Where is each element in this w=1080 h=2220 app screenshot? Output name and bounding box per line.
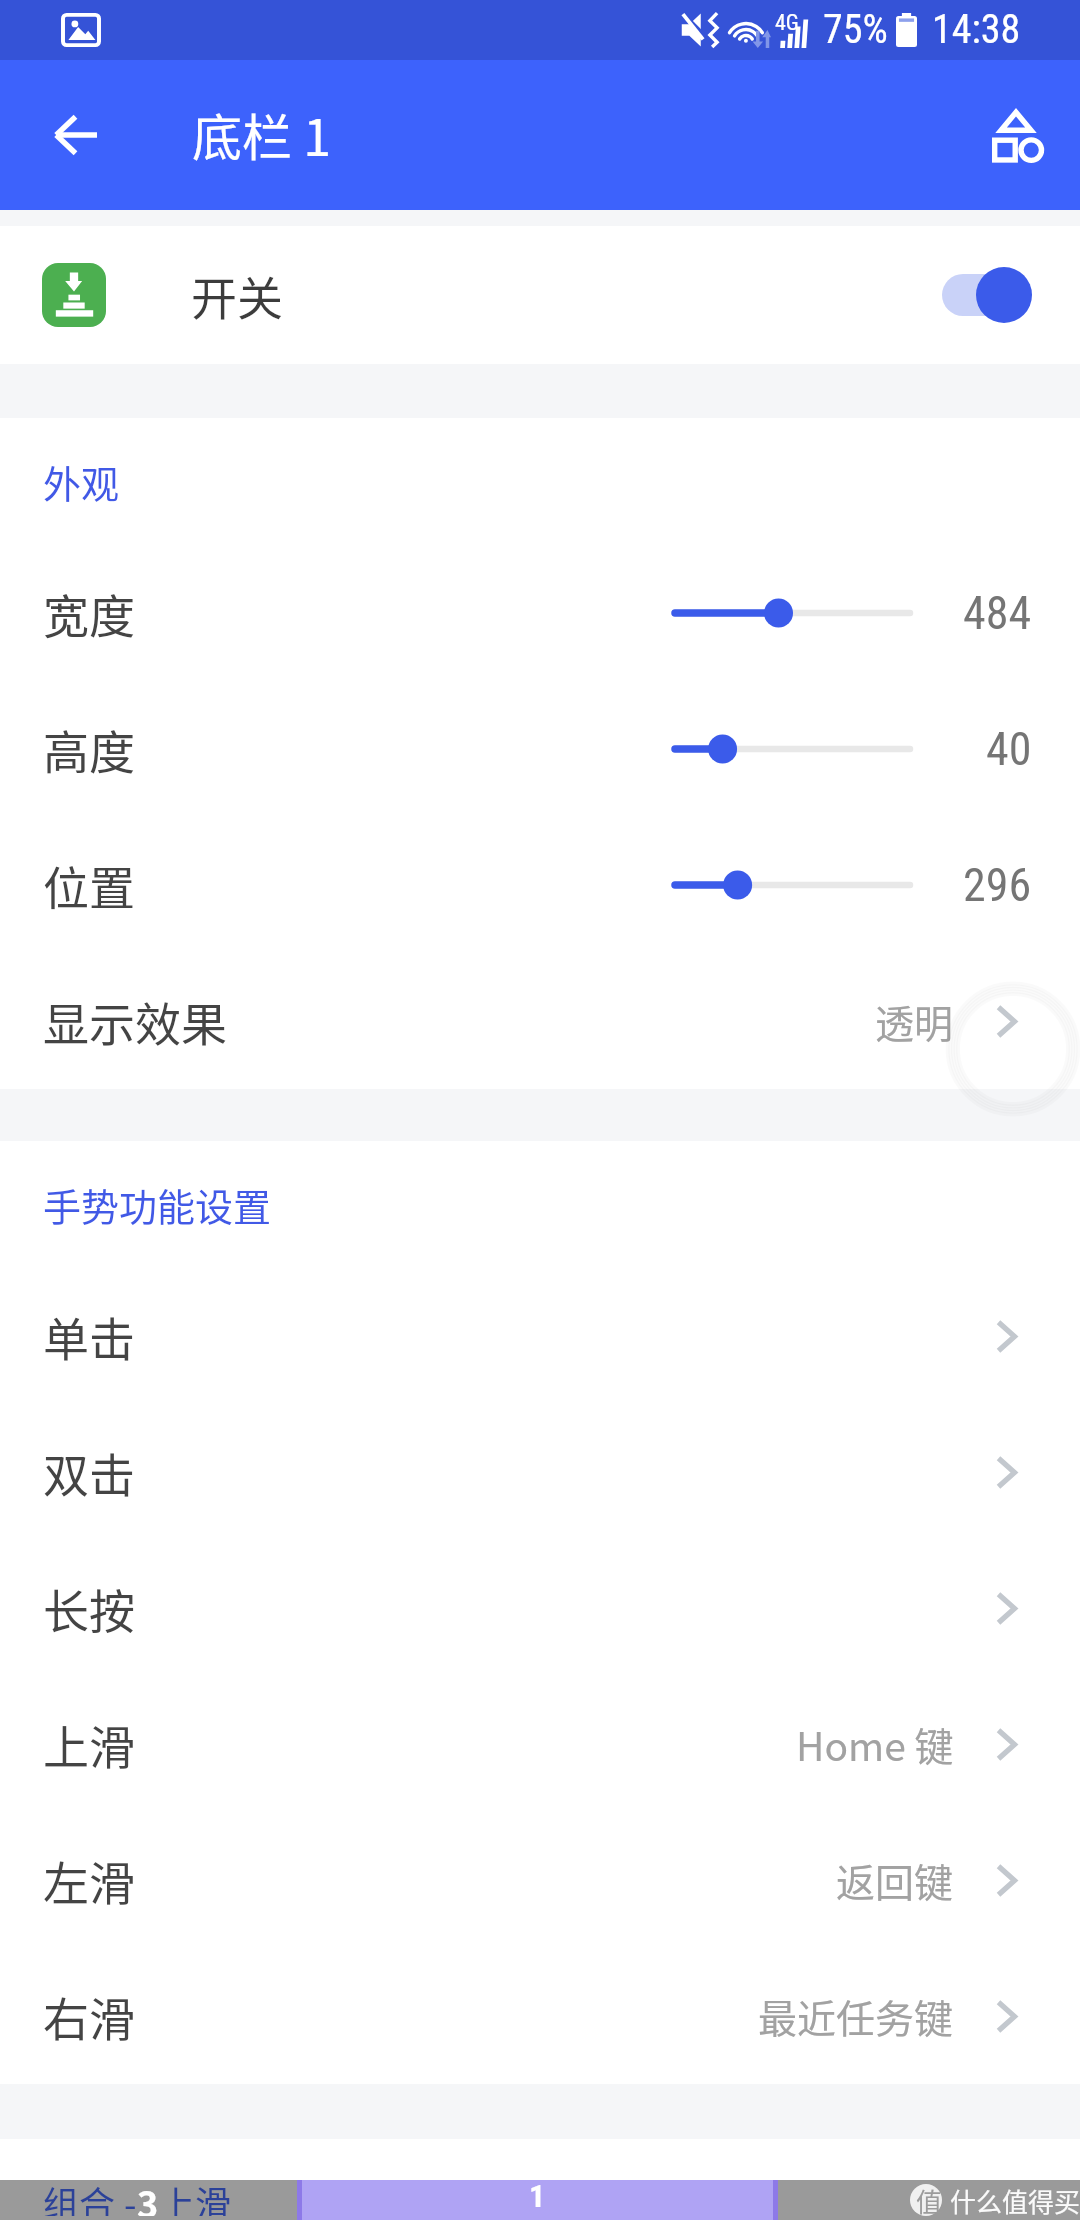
staticText: 手势功能设置 [43, 1177, 272, 1232]
button[interactable]: Back [28, 88, 122, 182]
staticText: 最近任务键 [758, 1988, 954, 2044]
staticText: 值 [916, 2182, 943, 2220]
button[interactable]: 左滑 [0, 1812, 1080, 1948]
button[interactable]: 双击 [0, 1404, 1080, 1540]
staticText: 上滑 [159, 2176, 232, 2216]
button[interactable]: 显示效果 [0, 953, 1080, 1089]
staticText: 高度 [43, 716, 135, 783]
staticText: 左滑 [43, 1847, 135, 1914]
button[interactable]: 宽度 [0, 545, 1080, 681]
button[interactable]: 高度 [0, 681, 1080, 817]
staticText: - [124, 2176, 137, 2216]
staticText: 75% [823, 6, 888, 53]
staticText: 长按 [43, 1575, 135, 1642]
staticText: 显示效果 [43, 988, 227, 1055]
staticText: 双击 [43, 1439, 135, 1506]
button[interactable]: 长按 [0, 1540, 1080, 1676]
staticText: 返回键 [836, 1852, 954, 1908]
staticText: 宽度 [43, 580, 135, 647]
staticText: 上滑 [43, 1711, 135, 1778]
staticText: 什么值得买 [950, 2182, 1080, 2220]
staticText: 外观 [43, 454, 120, 509]
staticText: 底栏 1 [192, 98, 331, 170]
staticText: 1 [529, 2177, 546, 2215]
staticText: 296 [963, 858, 1032, 912]
staticText: 开关 [191, 262, 283, 329]
button[interactable]: 上滑 [0, 1676, 1080, 1812]
staticText: 484 [963, 586, 1032, 640]
staticText: 位置 [43, 852, 135, 919]
button[interactable]: 右滑 [0, 1948, 1080, 2084]
button[interactable]: 开关 [0, 226, 1080, 364]
staticText: 右滑 [43, 1983, 135, 2050]
staticText: 单击 [43, 1303, 135, 1370]
staticText: 透明 [875, 993, 954, 1049]
button[interactable]: Toggle switch [940, 266, 1032, 324]
button[interactable]: 1 [297, 2180, 778, 2220]
button[interactable]: 位置 [0, 817, 1080, 953]
button[interactable]: Shapes [970, 88, 1064, 182]
button[interactable]: 单击 [0, 1268, 1080, 1404]
staticText: 组合 [43, 2176, 124, 2216]
staticText: 14:38 [932, 6, 1021, 53]
staticText: Home 键 [796, 1716, 954, 1772]
staticText: 3 [137, 2176, 159, 2216]
staticText: 40 [986, 722, 1032, 776]
staticText: 4G [775, 10, 799, 36]
